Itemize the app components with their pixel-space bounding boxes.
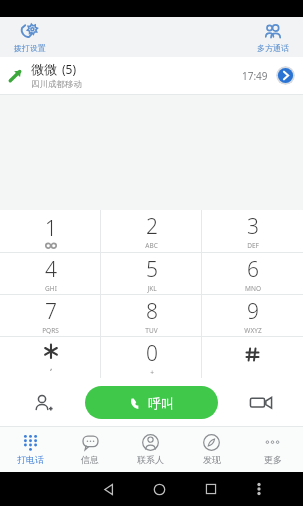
- button[interactable]: Menu: [236, 472, 282, 506]
- staticText: 6: [247, 255, 259, 284]
- button[interactable]: 信息: [60, 427, 120, 472]
- button[interactable]: 打电话: [0, 427, 60, 472]
- staticText: +: [150, 368, 154, 377]
- staticText: MNO: [245, 284, 261, 293]
- button[interactable]: ,: [0, 337, 101, 378]
- button[interactable]: 4: [0, 253, 101, 294]
- button[interactable]: 7: [0, 295, 101, 336]
- button[interactable]: Home: [134, 472, 185, 506]
- staticText: 5: [146, 255, 158, 284]
- button[interactable]: Back: [83, 472, 134, 506]
- staticText: 联系人: [137, 454, 164, 465]
- staticText: 8: [146, 297, 158, 326]
- staticText: 微微: [31, 61, 57, 77]
- button[interactable]: 更多: [242, 427, 303, 472]
- button[interactable]: Call details: [276, 66, 295, 85]
- staticText: 打电话: [17, 454, 44, 465]
- button[interactable]: 6: [202, 253, 303, 294]
- staticText: 多方通话: [257, 43, 289, 53]
- button[interactable]: 微微: [0, 57, 303, 94]
- staticText: 7: [45, 297, 57, 326]
- staticText: 呼叫: [148, 395, 174, 411]
- button[interactable]: 0: [101, 337, 202, 378]
- staticText: 拨打设置: [14, 43, 46, 53]
- button[interactable]: 呼叫: [85, 386, 218, 419]
- button[interactable]: 1: [0, 210, 101, 252]
- button[interactable]: 9: [202, 295, 303, 336]
- staticText: 0: [146, 339, 158, 368]
- staticText: 发现: [203, 454, 221, 465]
- button[interactable]: 3: [202, 210, 303, 252]
- staticText: ,: [50, 360, 53, 372]
- button[interactable]: 多方通话: [251, 20, 295, 55]
- staticText: 17:49: [242, 69, 268, 83]
- button[interactable]: Recent apps: [185, 472, 236, 506]
- staticText: ABC: [145, 241, 158, 250]
- staticText: PQRS: [42, 326, 59, 335]
- button[interactable]: 发现: [181, 427, 242, 472]
- button[interactable]: Video call: [218, 378, 303, 427]
- staticText: 9: [247, 297, 259, 326]
- button[interactable]: 2: [101, 210, 202, 252]
- button[interactable]: 8: [101, 295, 202, 336]
- staticText: 4: [45, 255, 57, 284]
- staticText: GHI: [45, 284, 57, 293]
- staticText: 3: [247, 212, 259, 241]
- staticText: (5): [62, 61, 77, 77]
- staticText: 更多: [264, 454, 282, 465]
- staticText: TUV: [145, 326, 158, 335]
- button[interactable]: 拨打设置: [8, 20, 52, 55]
- button[interactable]: 联系人: [120, 427, 181, 472]
- staticText: DEF: [247, 241, 259, 250]
- button[interactable]: 5: [101, 253, 202, 294]
- button[interactable]: [202, 337, 303, 378]
- staticText: 信息: [81, 454, 99, 465]
- button[interactable]: Add contact: [0, 378, 85, 427]
- staticText: WXYZ: [244, 326, 262, 335]
- staticText: 1: [45, 214, 57, 243]
- staticText: JKL: [147, 284, 157, 293]
- staticText: 四川成都移动: [31, 79, 82, 90]
- staticText: 2: [146, 212, 158, 241]
